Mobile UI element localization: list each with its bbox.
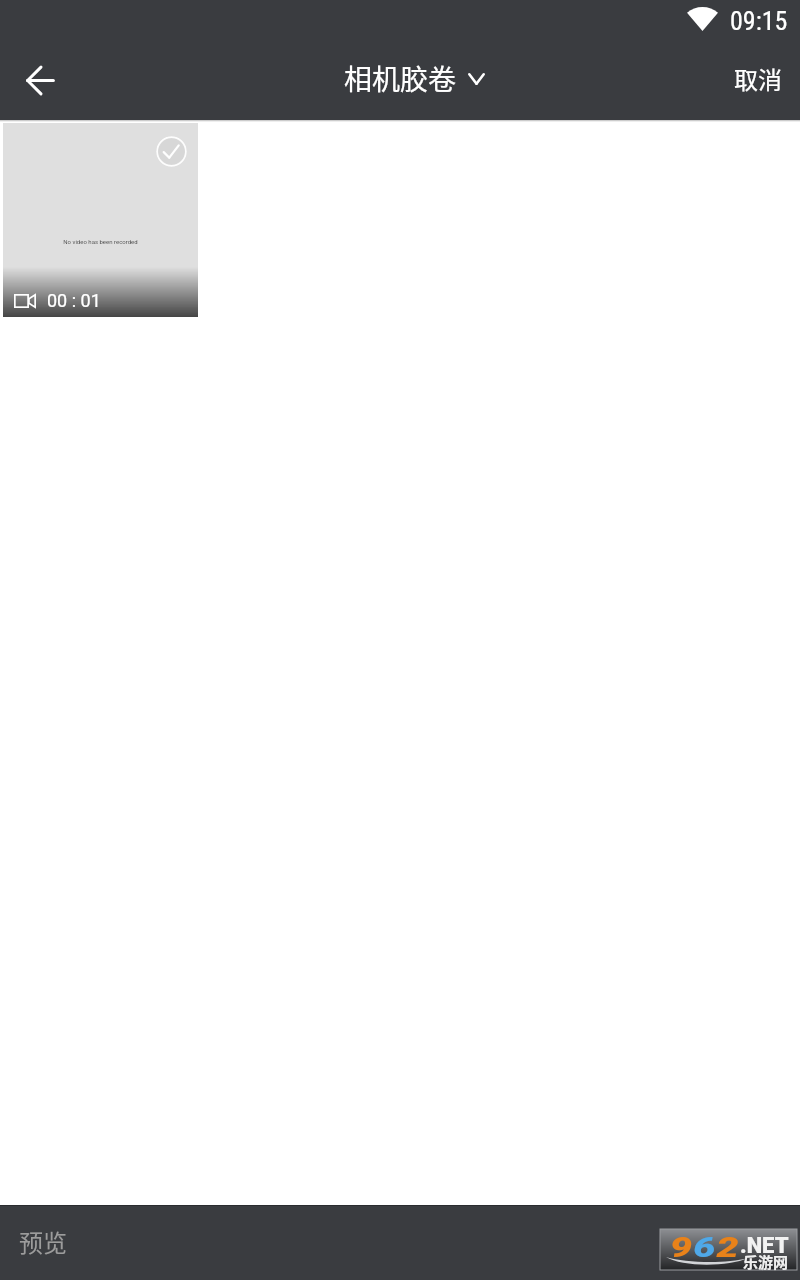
button[interactable]: Select item xyxy=(156,136,187,167)
staticText: .NET xyxy=(740,1233,789,1259)
button[interactable]: 相机胶卷 xyxy=(338,50,491,107)
staticText: 6 xyxy=(693,1232,716,1264)
button[interactable]: 预览 xyxy=(19,1224,67,1259)
staticText: 2 xyxy=(716,1232,740,1264)
button[interactable]: Back xyxy=(0,42,78,120)
staticText: 相机胶卷 xyxy=(344,58,457,99)
staticText: 09:15 xyxy=(730,6,788,36)
staticText: 预览 xyxy=(19,1224,67,1259)
staticText: 乐游网 xyxy=(743,1251,789,1273)
staticText: No video has been recorded xyxy=(63,238,138,245)
staticText: 9 xyxy=(670,1232,693,1264)
staticText: 00 : 01 xyxy=(47,290,101,311)
staticText: 取消 xyxy=(734,61,782,96)
button[interactable]: 取消 xyxy=(712,42,800,120)
button[interactable]: No video has been recorded xyxy=(3,123,198,317)
